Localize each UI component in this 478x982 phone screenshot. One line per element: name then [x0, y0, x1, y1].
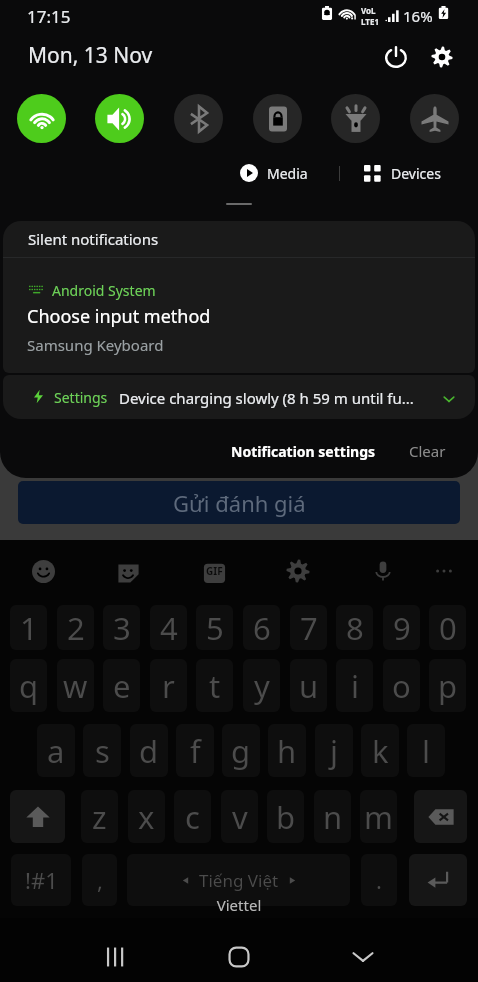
- staticText: Gửi đánh giá: [173, 488, 306, 518]
- staticText: b: [276, 796, 296, 838]
- staticText: c: [185, 796, 200, 838]
- staticText: Viettel: [0, 895, 478, 915]
- staticText: y: [254, 665, 270, 707]
- button[interactable]: o: [383, 659, 420, 712]
- button[interactable]: Stickers: [109, 552, 147, 590]
- staticText: e: [113, 665, 131, 707]
- button[interactable]: Wi-Fi: [17, 94, 66, 143]
- button[interactable]: Home: [211, 937, 267, 977]
- button[interactable]: w: [57, 659, 94, 712]
- staticText: p: [438, 665, 458, 707]
- button[interactable]: n: [314, 790, 351, 843]
- staticText: 8: [346, 607, 364, 649]
- staticText: Devices: [391, 164, 441, 183]
- button[interactable]: 6: [243, 605, 280, 650]
- staticText: v: [232, 796, 248, 838]
- button[interactable]: GIF: [195, 552, 233, 590]
- button[interactable]: 8: [336, 605, 373, 650]
- staticText: g: [231, 730, 251, 772]
- button[interactable]: v: [221, 790, 258, 843]
- button[interactable]: q: [10, 659, 47, 712]
- staticText: a: [47, 730, 65, 772]
- staticText: m: [364, 796, 393, 838]
- button[interactable]: ,: [82, 854, 117, 906]
- staticText: Tiếng Việt: [199, 869, 279, 892]
- button[interactable]: i: [336, 659, 373, 712]
- button[interactable]: x: [128, 790, 165, 843]
- staticText: GIF: [206, 564, 223, 578]
- button[interactable]: k: [361, 724, 399, 777]
- button[interactable]: Back: [335, 937, 391, 977]
- button[interactable]: Devices: [364, 159, 441, 187]
- button[interactable]: Gửi đánh giá: [18, 481, 460, 524]
- button[interactable]: y: [243, 659, 280, 712]
- button[interactable]: m: [360, 790, 397, 843]
- button[interactable]: Clear: [397, 435, 458, 467]
- staticText: ,: [97, 865, 103, 895]
- staticText: x: [138, 796, 155, 838]
- staticText: Android System: [52, 281, 156, 300]
- staticText: 3: [113, 607, 131, 649]
- staticText: r: [162, 665, 175, 707]
- button[interactable]: 0: [429, 605, 466, 650]
- button[interactable]: t: [196, 659, 233, 712]
- button[interactable]: Flashlight: [331, 94, 380, 143]
- staticText: Samsung Keyboard: [27, 335, 164, 355]
- staticText: 6: [253, 607, 271, 649]
- button[interactable]: 7: [290, 605, 327, 650]
- staticText: VoL: [361, 5, 376, 16]
- button[interactable]: p: [429, 659, 466, 712]
- button[interactable]: Recent apps: [86, 937, 142, 977]
- button[interactable]: Android System: [3, 258, 475, 373]
- button[interactable]: Auto rotate: [253, 94, 302, 143]
- button[interactable]: h: [268, 724, 306, 777]
- button[interactable]: Shift: [10, 790, 65, 843]
- button[interactable]: Power: [378, 39, 414, 75]
- button[interactable]: j: [315, 724, 353, 777]
- button[interactable]: 1: [10, 605, 47, 650]
- button[interactable]: Sound: [95, 94, 144, 143]
- button[interactable]: g: [222, 724, 260, 777]
- button[interactable]: z: [81, 790, 118, 843]
- button[interactable]: 9: [383, 605, 420, 650]
- staticText: Choose input method: [27, 304, 211, 329]
- button[interactable]: Emoji: [24, 552, 62, 590]
- staticText: 16%: [403, 6, 433, 26]
- button[interactable]: Notification settings: [219, 435, 388, 467]
- button[interactable]: s: [83, 724, 121, 777]
- button[interactable]: c: [174, 790, 211, 843]
- button[interactable]: d: [130, 724, 168, 777]
- button[interactable]: .: [361, 854, 397, 906]
- button[interactable]: Keyboard settings: [279, 552, 317, 590]
- button[interactable]: Bluetooth: [174, 94, 223, 143]
- button[interactable]: l: [407, 724, 445, 777]
- staticText: 1: [20, 607, 38, 649]
- button[interactable]: Settings: [424, 39, 460, 75]
- staticText: j: [330, 730, 338, 772]
- button[interactable]: f: [176, 724, 214, 777]
- button[interactable]: Voice input: [364, 552, 402, 590]
- button[interactable]: More options: [425, 552, 463, 590]
- staticText: Mon, 13 Nov: [28, 41, 153, 70]
- button[interactable]: Media: [240, 159, 308, 187]
- button[interactable]: b: [267, 790, 304, 843]
- staticText: 17:15: [27, 5, 71, 28]
- button[interactable]: Settings: [3, 375, 475, 419]
- button[interactable]: r: [150, 659, 187, 712]
- button[interactable]: 5: [196, 605, 233, 650]
- button[interactable]: 2: [57, 605, 94, 650]
- button[interactable]: Airplane mode: [410, 94, 459, 143]
- staticText: w: [63, 665, 88, 707]
- staticText: i: [351, 665, 359, 707]
- button[interactable]: 4: [150, 605, 187, 650]
- staticText: Device charging slowly (8 h 59 m until f…: [119, 388, 414, 408]
- staticText: f: [190, 730, 201, 772]
- button[interactable]: 3: [103, 605, 140, 650]
- button[interactable]: a: [37, 724, 75, 777]
- button[interactable]: Tiếng Việt: [127, 854, 350, 906]
- button[interactable]: Enter: [409, 854, 467, 906]
- button[interactable]: Backspace: [414, 790, 467, 843]
- button[interactable]: !#1: [11, 854, 71, 906]
- button[interactable]: e: [103, 659, 140, 712]
- button[interactable]: u: [290, 659, 327, 712]
